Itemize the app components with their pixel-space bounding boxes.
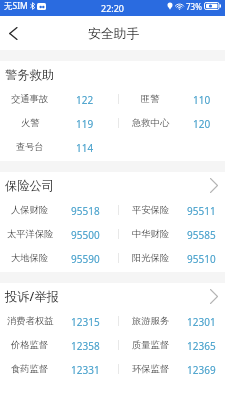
button[interactable]: 匪警 [118,87,225,111]
staticText: 12369 [187,363,216,377]
button[interactable]: 交通事故 [0,87,118,111]
staticText: 中华财险 [132,228,170,240]
button[interactable]: 旅游服务 [118,309,225,333]
staticText: 价格监督 [11,339,49,351]
button[interactable]: 阳光保险 [118,246,225,270]
staticText: 114 [76,141,94,155]
button[interactable]: 消费者权益 [0,309,118,333]
staticText: 旅游服务 [132,315,170,327]
staticText: 95590 [71,252,100,266]
button[interactable]: 大地保险 [0,246,118,270]
staticText: 质量监督 [132,339,170,351]
button[interactable]: 平安保险 [118,198,225,222]
staticText: 95511 [187,204,216,218]
button[interactable]: Back [0,16,26,50]
staticText: 12365 [187,339,216,353]
staticText: 环保监督 [132,363,170,375]
staticText: 119 [76,117,94,131]
staticText: 平安保险 [132,204,170,216]
staticText: 95518 [71,204,100,218]
staticText: 95500 [71,228,100,242]
staticText: 95510 [187,252,216,266]
button[interactable]: 质量监督 [118,333,225,357]
staticText: 太平洋保险 [7,228,54,240]
staticText: 122 [76,93,94,107]
staticText: 投诉/举报 [5,288,59,305]
staticText: 阳光保险 [132,252,170,264]
staticText: 95585 [187,228,216,242]
button[interactable]: More [203,283,225,309]
staticText: 匪警 [141,93,160,105]
button[interactable]: 环保监督 [118,357,225,381]
staticText: 12358 [71,339,100,353]
staticText: 急救中心 [132,117,170,129]
staticText: 12315 [71,315,100,329]
staticText: 查号台 [16,141,44,153]
staticText: 安全助手 [88,26,140,42]
staticText: 食药监督 [11,363,49,375]
staticText: 110 [193,93,211,107]
staticText: 12301 [187,315,216,329]
staticText: 大地保险 [11,252,49,264]
staticText: 人保财险 [11,204,49,216]
staticText: 交通事故 [11,93,49,105]
button[interactable]: 人保财险 [0,198,118,222]
button[interactable]: 火警 [0,111,118,135]
staticText: 保险公司 [5,178,55,193]
button[interactable]: 急救中心 [118,111,225,135]
staticText: 火警 [21,117,40,129]
staticText: 无SIM [4,0,28,12]
button[interactable]: 查号台 [0,135,118,159]
button[interactable]: More [203,172,225,198]
button[interactable]: 食药监督 [0,357,118,381]
staticText: 22:20 [101,2,125,14]
staticText: 73% [186,1,202,12]
staticText: 警务救助 [5,67,55,82]
staticText: 120 [193,117,211,131]
button[interactable]: 太平洋保险 [0,222,118,246]
staticText: 12331 [71,363,100,377]
button[interactable]: 价格监督 [0,333,118,357]
button[interactable]: 中华财险 [118,222,225,246]
staticText: 消费者权益 [7,315,54,327]
